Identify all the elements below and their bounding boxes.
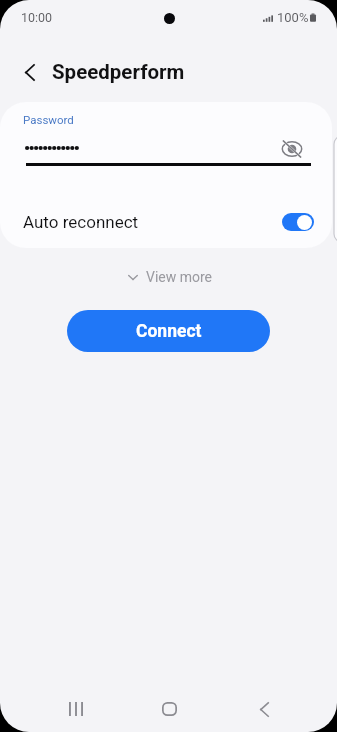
staticText: 100% [277,10,309,25]
button[interactable]: Back [241,686,288,732]
button[interactable]: Show password [280,137,304,161]
staticText: Password [23,113,74,126]
staticText: Speedperform [52,60,185,84]
button[interactable]: Home [146,686,193,732]
button[interactable]: Navigate up [12,55,46,89]
staticText: View more [146,269,213,285]
button[interactable]: View more [122,265,219,289]
staticText: Auto reconnect [23,212,139,232]
button[interactable]: Auto reconnect [0,203,337,241]
button[interactable]: Recent apps [52,686,99,732]
staticText: Connect [136,321,202,342]
button[interactable]: Connect [67,310,270,352]
button[interactable]: Auto reconnect [282,213,314,231]
staticText: 10:00 [21,10,53,25]
